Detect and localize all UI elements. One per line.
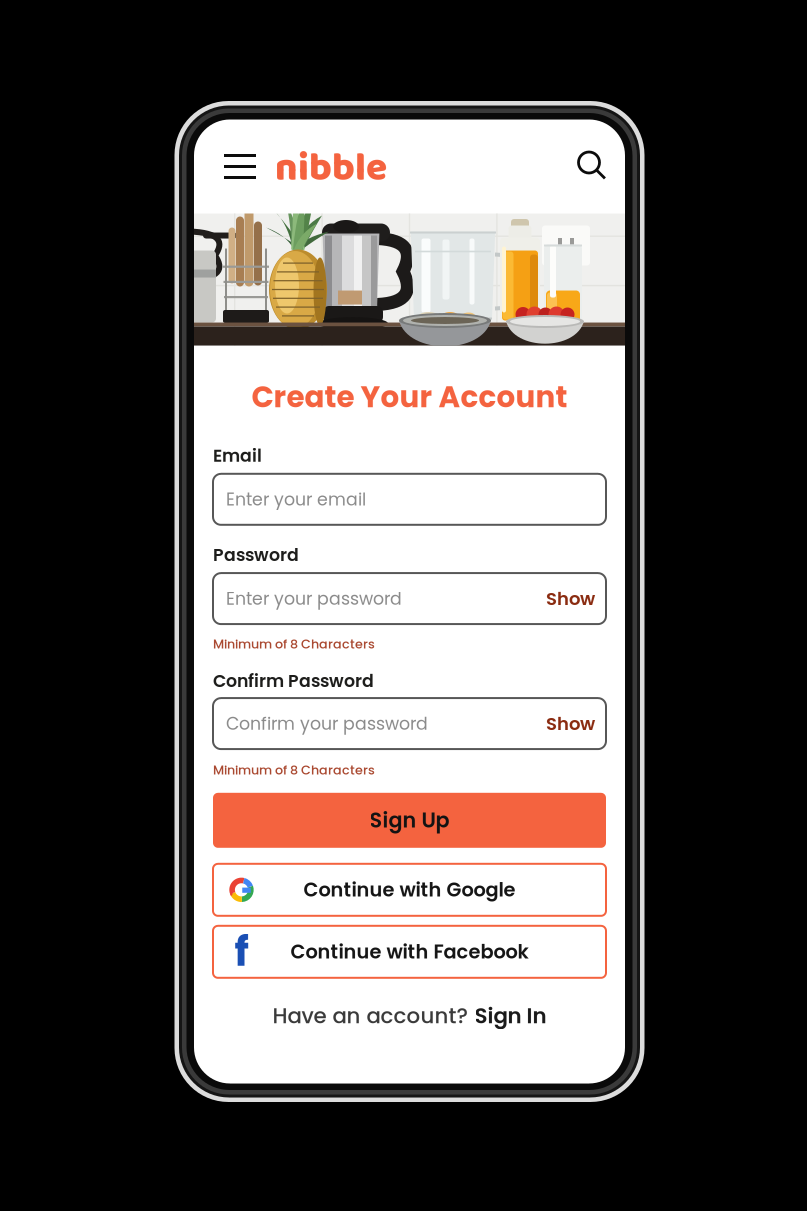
staticText: nibble <box>275 137 387 199</box>
button[interactable]: Have an account? <box>213 1001 606 1031</box>
staticText: Email <box>213 444 262 468</box>
staticText: Sign In <box>474 1001 546 1031</box>
staticText: Confirm your password <box>226 711 428 736</box>
staticText: Minimum of 8 Characters <box>213 761 375 779</box>
staticText: f <box>234 924 248 980</box>
staticText: Minimum of 8 Characters <box>213 635 375 653</box>
staticText: Continue with Facebook <box>290 938 528 965</box>
staticText: Show <box>546 711 595 736</box>
staticText: Create Your Account <box>251 376 567 418</box>
button[interactable]: Menu <box>220 149 260 183</box>
button[interactable]: Continue with Google <box>213 864 606 916</box>
staticText: Password <box>213 543 299 567</box>
button[interactable]: nibble <box>275 135 387 197</box>
staticText: Have an account? <box>272 1001 467 1031</box>
staticText: Enter your password <box>226 586 402 611</box>
staticText: Sign Up <box>369 806 449 835</box>
button[interactable]: f <box>213 926 606 978</box>
staticText: Continue with Google <box>303 876 515 903</box>
button[interactable]: Search <box>577 150 609 182</box>
staticText: Enter your email <box>226 487 366 511</box>
button[interactable]: Sign Up <box>213 793 606 848</box>
staticText: Show <box>546 586 595 611</box>
staticText: Confirm Password <box>213 669 374 693</box>
